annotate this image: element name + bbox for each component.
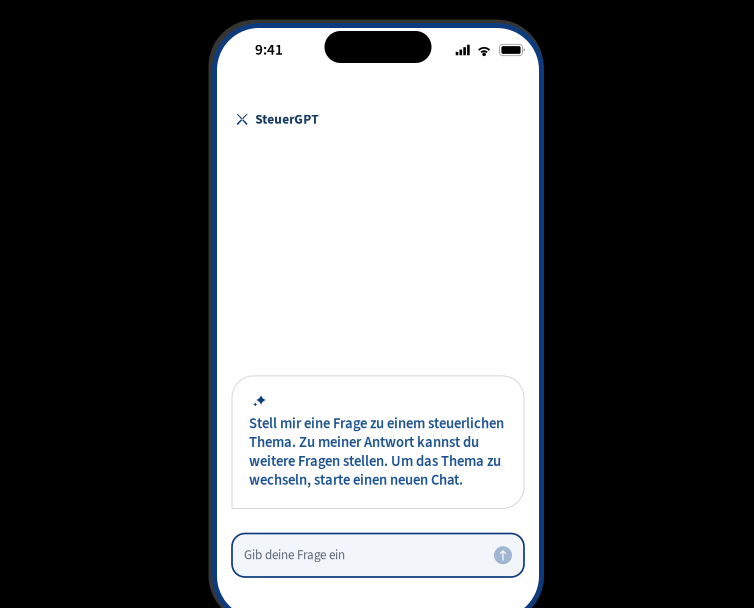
staticText: SteuerGPT: [255, 110, 318, 129]
button[interactable]: Gib deine Frage ein: [232, 533, 524, 577]
staticText: 9:41: [255, 39, 283, 61]
staticText: Stell mir eine Frage zu einem steuerlich…: [249, 414, 504, 489]
button[interactable]: Frage senden: [494, 546, 512, 564]
staticText: Gib deine Frage ein: [244, 546, 345, 564]
button[interactable]: SteuerGPT: [236, 104, 324, 138]
